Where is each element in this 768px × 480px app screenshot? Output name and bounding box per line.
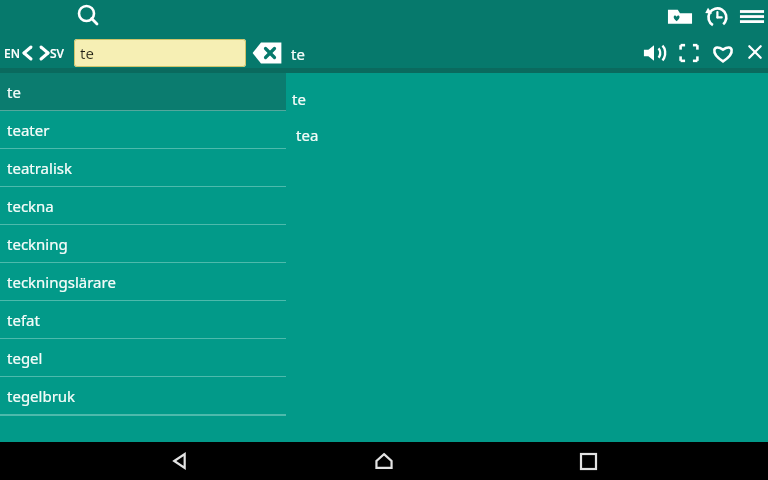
button[interactable]: tegel: [0, 339, 286, 377]
button[interactable]: Back: [156, 442, 204, 480]
button[interactable]: teater: [0, 111, 286, 149]
staticText: te: [7, 82, 21, 102]
button[interactable]: te: [0, 73, 286, 111]
staticText: tegel: [7, 348, 43, 368]
staticText: teckna: [7, 196, 54, 216]
staticText: teckningslärare: [7, 272, 116, 292]
button[interactable]: Add to favourites: [709, 39, 737, 67]
button[interactable]: Close: [742, 39, 768, 65]
button[interactable]: History: [702, 2, 730, 30]
button[interactable]: Recent apps: [564, 442, 612, 480]
staticText: tefat: [7, 310, 40, 330]
button[interactable]: Menu: [738, 2, 766, 30]
button[interactable]: te: [74, 39, 246, 67]
staticText: te: [80, 43, 94, 63]
button[interactable]: teckning: [0, 225, 286, 263]
button[interactable]: tea: [296, 125, 319, 145]
staticText: teatralisk: [7, 158, 72, 178]
button[interactable]: teckningslärare: [0, 263, 286, 301]
staticText: teater: [7, 120, 50, 140]
button[interactable]: te: [292, 89, 306, 109]
button[interactable]: Fullscreen: [675, 39, 703, 67]
staticText: SV: [50, 45, 64, 61]
staticText: te: [291, 44, 305, 64]
staticText: tegelbruk: [7, 386, 76, 406]
button[interactable]: Favourites folder: [666, 2, 694, 30]
button[interactable]: EN: [4, 40, 64, 66]
button[interactable]: tefat: [0, 301, 286, 339]
button[interactable]: tegelbruk: [0, 377, 286, 415]
button[interactable]: teatralisk: [0, 149, 286, 187]
staticText: EN: [4, 45, 20, 61]
button[interactable]: Pronounce: [640, 39, 668, 67]
button[interactable]: Search: [74, 2, 102, 30]
button[interactable]: Clear: [252, 41, 282, 65]
staticText: teckning: [7, 234, 68, 254]
button[interactable]: Home: [360, 442, 408, 480]
button[interactable]: teckna: [0, 187, 286, 225]
